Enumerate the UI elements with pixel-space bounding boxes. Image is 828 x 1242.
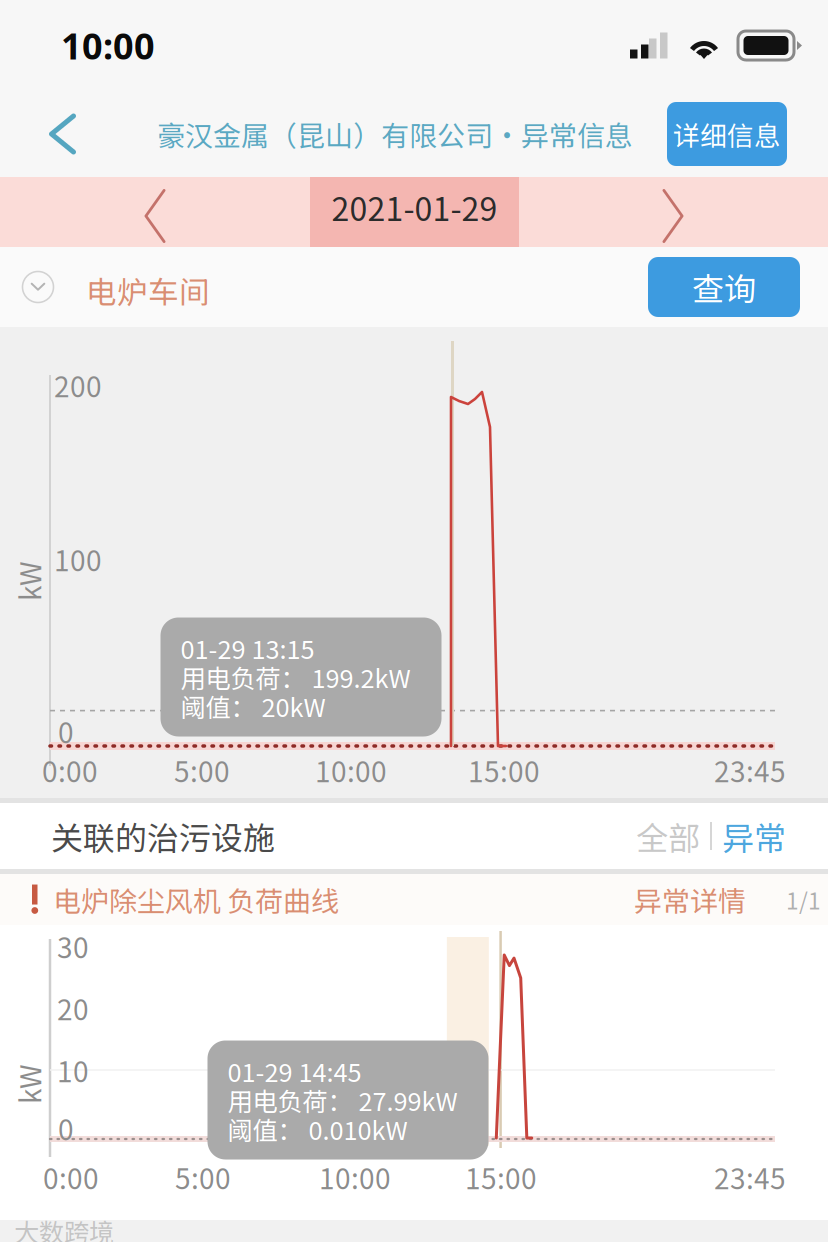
button[interactable]: 全部 <box>626 803 710 869</box>
staticText: 全部 <box>636 813 700 859</box>
staticText: 10:00 <box>315 750 387 790</box>
staticText: 23:45 <box>714 1157 786 1197</box>
staticText: 10:00 <box>61 22 155 69</box>
button[interactable]: Choose workshop <box>9 258 67 316</box>
staticText: kW <box>9 1064 49 1104</box>
staticText: 用电负荷： 199.2kW <box>180 659 410 695</box>
staticText: 阈值： 20kW <box>180 688 325 724</box>
staticText: 用电负荷： 27.99kW <box>227 1082 457 1118</box>
button[interactable]: Next day <box>638 181 708 251</box>
staticText: 2021-01-29 <box>331 184 497 230</box>
staticText: 异常详情 <box>634 879 746 920</box>
staticText: 查询 <box>692 264 756 310</box>
staticText: 大数跨境 <box>14 1213 114 1242</box>
staticText: 详细信息 <box>673 115 781 153</box>
staticText: 01-29 14:45 <box>227 1053 361 1089</box>
staticText: 关联的治污设施 <box>51 813 275 859</box>
staticText: 1/1 <box>786 883 821 916</box>
staticText: 0:00 <box>43 1157 99 1197</box>
staticText: 5:00 <box>175 1157 231 1197</box>
staticText: 阈值： 0.010kW <box>227 1111 407 1147</box>
staticText: 200 <box>54 365 102 405</box>
staticText: 0:00 <box>42 750 98 790</box>
button[interactable]: 详细信息 <box>667 102 787 166</box>
staticText: 15:00 <box>465 1157 537 1197</box>
button[interactable]: 查询 <box>648 257 800 317</box>
button[interactable]: Back <box>0 91 125 177</box>
button[interactable]: 异常详情 <box>634 879 746 920</box>
staticText: 0 <box>58 1108 74 1148</box>
staticText: 15:00 <box>468 750 540 790</box>
button[interactable]: 异常 <box>712 803 796 869</box>
staticText: 100 <box>54 539 102 579</box>
staticText: 20 <box>57 988 89 1028</box>
staticText: kW <box>9 561 49 601</box>
staticText: 5:00 <box>174 750 230 790</box>
staticText: 30 <box>57 926 89 966</box>
staticText: 电炉车间 <box>86 268 210 312</box>
staticText: 异常 <box>722 813 786 859</box>
button[interactable]: Previous day <box>120 181 190 251</box>
staticText: 01-29 13:15 <box>180 630 314 666</box>
staticText: 电炉除尘风机 负荷曲线 <box>53 879 339 920</box>
staticText: 10 <box>57 1050 89 1090</box>
staticText: 豪汉金属（昆山）有限公司•异常信息 <box>157 114 633 154</box>
staticText: 23:45 <box>714 750 786 790</box>
staticText: 0 <box>58 711 74 751</box>
staticText: 10:00 <box>319 1157 391 1197</box>
